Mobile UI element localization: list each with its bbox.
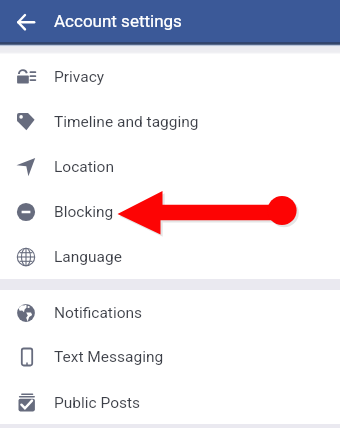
button[interactable]: Text Messaging bbox=[0, 334, 340, 379]
staticText: Notifications bbox=[54, 304, 143, 322]
staticText: Text Messaging bbox=[54, 348, 164, 366]
button[interactable]: Notifications bbox=[0, 290, 340, 335]
staticText: Language bbox=[54, 248, 122, 266]
button[interactable]: Language bbox=[0, 234, 340, 279]
button[interactable]: Public Posts bbox=[0, 380, 340, 425]
staticText: Account settings bbox=[54, 11, 182, 31]
staticText: Public Posts bbox=[54, 394, 141, 412]
button[interactable]: Timeline and tagging bbox=[0, 99, 340, 144]
button[interactable]: Blocking bbox=[0, 189, 340, 234]
staticText: Location bbox=[54, 158, 114, 176]
staticText: Timeline and tagging bbox=[54, 113, 199, 131]
staticText: Blocking bbox=[54, 203, 114, 221]
button[interactable]: Navigate up bbox=[8, 5, 44, 41]
staticText: Privacy bbox=[54, 68, 105, 86]
button[interactable]: Location bbox=[0, 144, 340, 189]
button[interactable]: Privacy bbox=[0, 54, 340, 99]
